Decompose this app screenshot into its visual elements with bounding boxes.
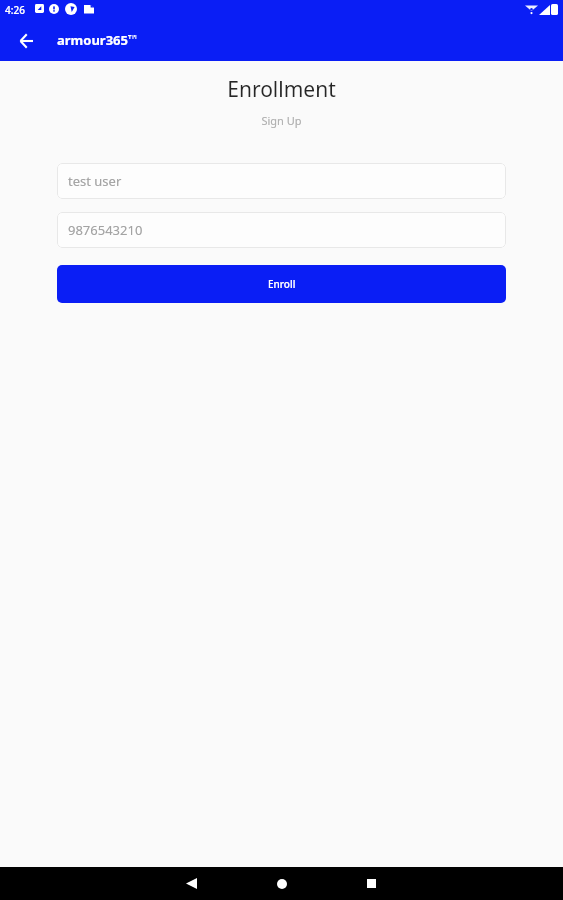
staticText: 9876543210 — [68, 221, 143, 239]
staticText: 4:26 — [5, 3, 25, 17]
button[interactable]: test user — [57, 163, 506, 199]
staticText: armour365 — [57, 31, 128, 49]
button[interactable]: Back — [7, 21, 46, 60]
button[interactable]: Back — [175, 867, 208, 900]
button[interactable]: Recent apps — [355, 867, 388, 900]
staticText: Enrollment — [0, 75, 563, 104]
button[interactable]: Enroll — [57, 265, 506, 303]
staticText: Enroll — [268, 277, 296, 291]
staticText: Sign Up — [0, 113, 563, 128]
staticText: test user — [68, 172, 122, 190]
button[interactable]: Home — [265, 867, 298, 900]
button[interactable]: 9876543210 — [57, 212, 506, 248]
